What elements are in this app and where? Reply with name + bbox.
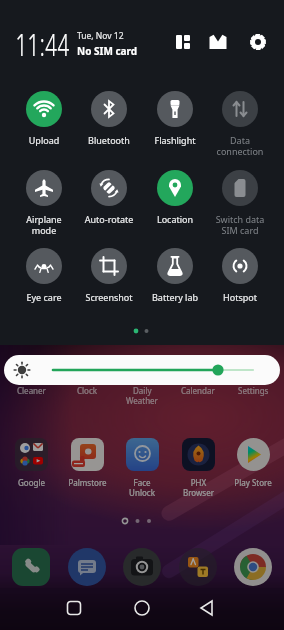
staticText: Data connection	[208, 134, 272, 157]
button[interactable]: PHX Browser	[170, 438, 226, 498]
button[interactable]	[179, 548, 217, 586]
staticText: Bluetooth	[77, 134, 141, 146]
staticText: Screenshot	[77, 291, 141, 303]
button[interactable]	[4, 355, 280, 385]
staticText: Hotspot	[208, 291, 272, 303]
button[interactable]	[68, 548, 106, 586]
button[interactable]: Palmstore	[59, 438, 115, 488]
button[interactable]: Screenshot	[76, 248, 142, 303]
staticText: 11:44	[15, 24, 71, 66]
staticText: Airplane mode	[12, 213, 76, 236]
button[interactable]	[123, 548, 161, 586]
button[interactable]: Bluetooth	[76, 91, 142, 146]
staticText: Face Unlock	[129, 477, 155, 498]
button[interactable]	[245, 29, 271, 55]
staticText: Location	[143, 213, 207, 225]
staticText: Palmstore	[68, 477, 107, 488]
staticText: Clock	[77, 385, 98, 396]
staticText: Switch data SIM card	[208, 213, 272, 236]
staticText: Daily	[133, 385, 152, 396]
staticText: Cleaner	[17, 385, 46, 396]
button[interactable]: Upload	[11, 91, 77, 146]
staticText: Battery lab	[143, 291, 207, 303]
staticText: No SIM card	[77, 44, 138, 58]
staticText: Calendar	[181, 385, 215, 396]
staticText: Tue, Nov 12	[77, 30, 124, 42]
button[interactable]: Auto-rotate	[76, 170, 142, 225]
button[interactable]: Location	[142, 170, 208, 225]
staticText: PHX Browser	[183, 477, 214, 498]
staticText: Flashlight	[143, 134, 207, 146]
staticText: Eye care	[12, 291, 76, 303]
staticText: Weather	[126, 395, 158, 406]
button[interactable]: Airplane mode	[11, 170, 77, 236]
button[interactable]	[12, 548, 50, 586]
button[interactable]: Face Unlock	[114, 438, 170, 498]
button[interactable]	[234, 548, 272, 586]
button[interactable]: Battery lab	[142, 248, 208, 303]
button[interactable]: Play Store	[225, 438, 281, 488]
staticText: Auto-rotate	[77, 213, 141, 225]
button[interactable]	[189, 588, 284, 630]
staticText: Play Store	[234, 477, 272, 488]
button[interactable]: Hotspot	[207, 248, 273, 303]
staticText: Upload	[12, 134, 76, 146]
button[interactable]: Switch data SIM card	[207, 170, 273, 236]
button[interactable]: Eye care	[11, 248, 77, 303]
button[interactable]: Data connection	[207, 91, 273, 157]
button[interactable]	[205, 29, 231, 55]
button[interactable]: Flashlight	[142, 91, 208, 146]
staticText: Google	[18, 477, 45, 488]
button[interactable]: Google	[3, 438, 59, 488]
button[interactable]	[94, 588, 189, 630]
button[interactable]	[170, 29, 196, 55]
staticText: Settings	[238, 385, 269, 396]
button[interactable]	[0, 588, 94, 630]
